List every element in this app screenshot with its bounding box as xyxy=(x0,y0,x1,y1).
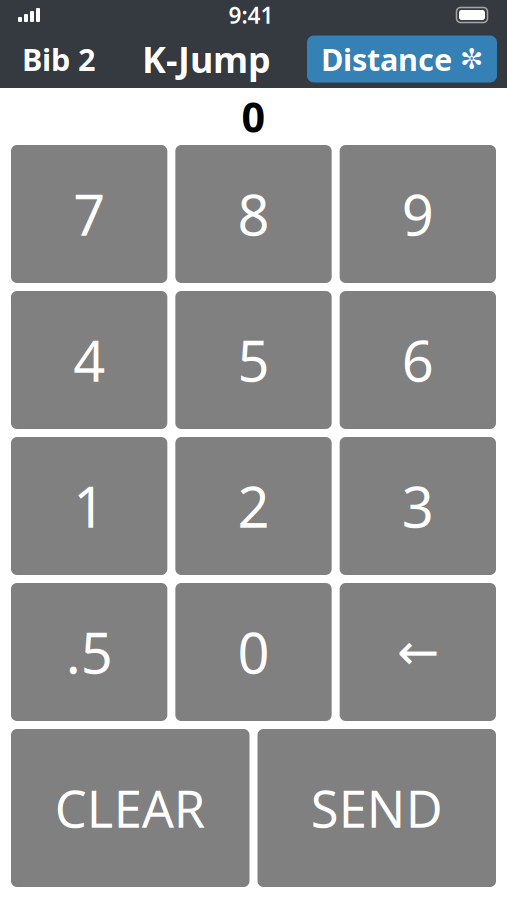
staticText: .5 xyxy=(66,615,113,689)
button[interactable]: 6 xyxy=(340,291,496,429)
button[interactable]: 4 xyxy=(11,291,167,429)
button[interactable]: Bib 2 xyxy=(12,31,106,87)
staticText: SEND xyxy=(311,774,443,842)
button[interactable]: .5 xyxy=(11,583,167,721)
staticText: 9:41 xyxy=(228,0,273,30)
button[interactable]: CLEAR xyxy=(11,729,249,887)
button[interactable]: 8 xyxy=(175,145,332,283)
button[interactable]: SEND xyxy=(257,729,496,887)
staticText: K-Jump xyxy=(142,35,271,83)
button[interactable]: Distance xyxy=(307,35,497,82)
staticText: 0 xyxy=(241,89,265,144)
button[interactable]: 3 xyxy=(340,437,496,575)
staticText: CLEAR xyxy=(55,774,206,842)
staticText: 8 xyxy=(237,177,269,251)
staticText: Distance xyxy=(321,39,452,79)
button[interactable]: 5 xyxy=(175,291,332,429)
staticText: ← xyxy=(397,623,439,681)
button[interactable]: 1 xyxy=(11,437,167,575)
button[interactable]: 2 xyxy=(175,437,332,575)
staticText: 6 xyxy=(402,323,434,397)
staticText: 7 xyxy=(73,177,105,251)
staticText: 5 xyxy=(237,323,269,397)
staticText: 1 xyxy=(73,469,105,543)
button[interactable]: Backspace xyxy=(340,583,496,721)
staticText: ✼ xyxy=(460,43,483,75)
staticText: 3 xyxy=(402,469,434,543)
button[interactable]: 7 xyxy=(11,145,167,283)
button[interactable]: 9 xyxy=(340,145,496,283)
staticText: 4 xyxy=(73,323,105,397)
button[interactable]: 0 xyxy=(175,583,332,721)
staticText: 9 xyxy=(402,177,434,251)
staticText: 0 xyxy=(237,615,269,689)
staticText: 2 xyxy=(237,469,269,543)
staticText: Bib 2 xyxy=(22,39,96,79)
